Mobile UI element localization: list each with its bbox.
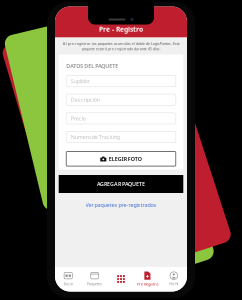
button[interactable]: AGREGAR PAQUETE <box>59 175 183 193</box>
staticText: Ver paquetes pre-registrados <box>85 201 156 209</box>
staticText: ELEGIR FOTO <box>109 155 142 162</box>
staticText: Descripción <box>71 96 100 103</box>
staticText: Precio <box>71 115 86 122</box>
staticText: Suplidor <box>71 78 90 85</box>
button[interactable]: ELEGIR FOTO <box>66 152 176 166</box>
button[interactable]: Ver paquetes pre-registrados <box>55 200 187 210</box>
staticText: Numero de Tracking <box>71 133 120 140</box>
button[interactable]: Inicio <box>55 266 81 291</box>
staticText: Perfil <box>169 281 178 286</box>
button[interactable]: Pre Registro <box>134 266 161 291</box>
button[interactable]: Perfil <box>161 266 187 291</box>
staticText: Inicio <box>64 281 73 286</box>
staticText: Paquetes <box>87 281 102 286</box>
button[interactable]: Escanear <box>108 266 134 291</box>
staticText: Pre - Registro <box>99 25 143 33</box>
staticText: Pre Registro <box>137 281 158 287</box>
staticText: Al pre-registrar tus paquetes acumulas e… <box>62 41 179 51</box>
staticText: AGREGAR PAQUETE <box>97 180 145 188</box>
button[interactable]: Paquetes <box>81 266 108 291</box>
staticText: DATOS DEL PAQUETE <box>66 62 118 70</box>
